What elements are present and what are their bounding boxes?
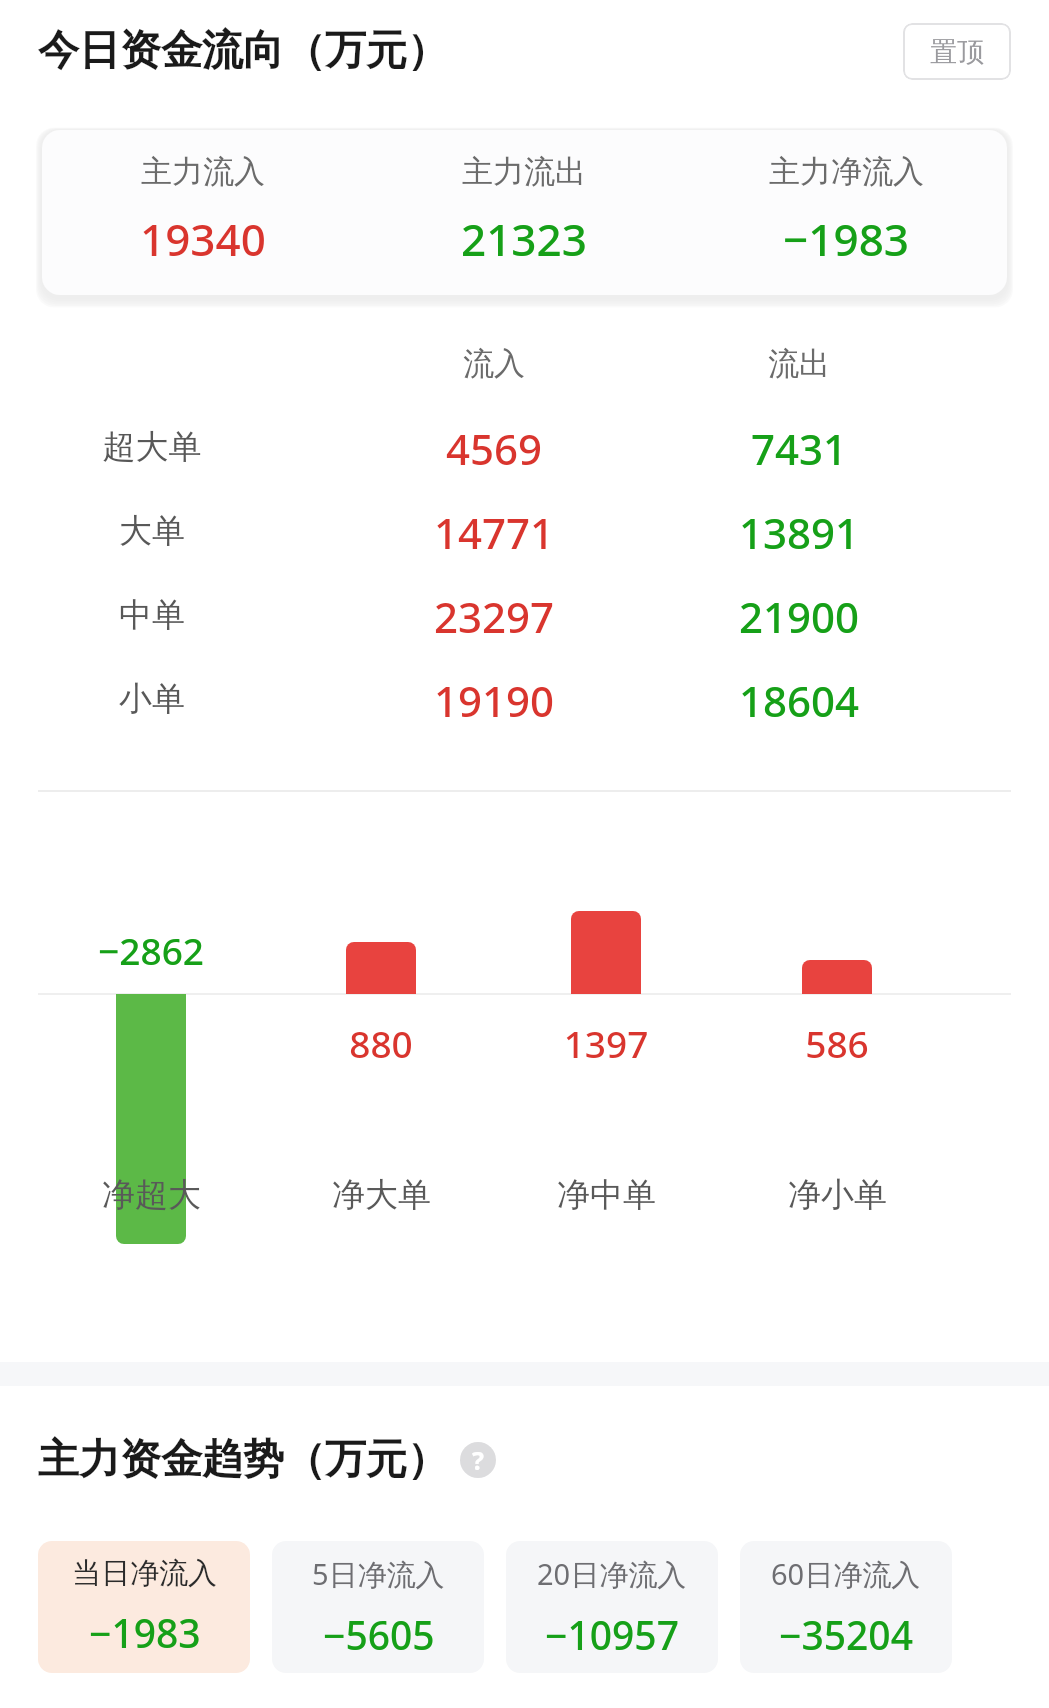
staticText: 586: [677, 1018, 997, 1068]
staticText: 5日净流入: [312, 1554, 445, 1594]
staticText: 14771: [334, 504, 654, 561]
staticText: −5605: [323, 1608, 435, 1661]
staticText: 净中单: [557, 1174, 656, 1216]
staticText: 主力流出: [462, 152, 586, 191]
button[interactable]: [38, 572, 1011, 656]
staticText: 13891: [639, 504, 959, 561]
staticText: 置顶: [930, 35, 984, 69]
staticText: 主力净流入: [769, 152, 924, 191]
staticText: −10957: [545, 1608, 679, 1661]
staticText: 23297: [334, 588, 654, 645]
staticText: 大单: [0, 510, 312, 552]
staticText: 净大单: [332, 1174, 431, 1216]
staticText: 4569: [334, 420, 654, 477]
staticText: 今日资金流向（万元）: [38, 25, 448, 77]
staticText: 超大单: [0, 426, 312, 468]
staticText: 880: [221, 1018, 541, 1068]
staticText: 20日净流入: [537, 1554, 687, 1594]
staticText: 21323: [461, 209, 587, 269]
button[interactable]: 净小单: [757, 1160, 917, 1230]
staticText: 19340: [140, 209, 266, 269]
button[interactable]: [38, 656, 1011, 740]
staticText: −1983: [89, 1606, 201, 1659]
staticText: −2862: [0, 925, 311, 975]
staticText: 21900: [639, 588, 959, 645]
staticText: 净小单: [788, 1174, 887, 1216]
button[interactable]: [38, 404, 1011, 488]
button[interactable]: 净大单: [301, 1160, 461, 1230]
button[interactable]: 5日净流入: [272, 1541, 484, 1673]
button[interactable]: 当日净流入: [38, 1541, 250, 1673]
staticText: 当日净流入: [72, 1555, 217, 1592]
staticText: 中单: [0, 594, 312, 636]
staticText: 19190: [334, 672, 654, 729]
staticText: 流出: [639, 344, 959, 383]
button[interactable]: 60日净流入: [740, 1541, 952, 1673]
button[interactable]: 20日净流入: [506, 1541, 718, 1673]
staticText: 18604: [639, 672, 959, 729]
staticText: 流入: [334, 344, 654, 383]
staticText: −35204: [779, 1608, 913, 1661]
staticText: 小单: [0, 678, 312, 720]
staticText: −1983: [783, 209, 909, 269]
staticText: 7431: [639, 420, 959, 477]
staticText: ?: [472, 1443, 484, 1477]
staticText: 60日净流入: [771, 1554, 921, 1594]
staticText: 主力流入: [141, 152, 265, 191]
button[interactable]: 置顶: [903, 23, 1011, 80]
staticText: 1397: [446, 1018, 766, 1068]
staticText: 净超大: [102, 1174, 201, 1216]
button[interactable]: [38, 488, 1011, 572]
button[interactable]: 净中单: [526, 1160, 686, 1230]
staticText: 主力资金趋势（万元）: [38, 1434, 448, 1486]
button[interactable]: 帮助说明: [460, 1442, 496, 1478]
button[interactable]: 主力流入: [42, 130, 1007, 295]
button[interactable]: 净超大: [71, 1160, 231, 1230]
